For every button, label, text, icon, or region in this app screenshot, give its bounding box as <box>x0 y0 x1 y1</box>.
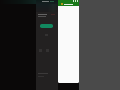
button[interactable] <box>40 24 53 28</box>
